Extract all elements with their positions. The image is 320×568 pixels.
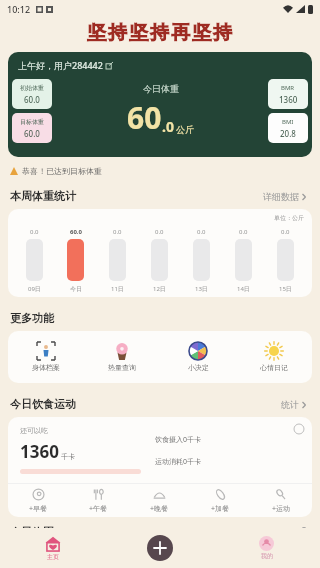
staticText: BMI [282, 118, 294, 126]
staticText: 单位：公斤 [274, 214, 304, 222]
staticText: 15日 [279, 285, 292, 293]
staticText: 还可以吃 [20, 426, 48, 435]
staticText: 20.8 [280, 128, 296, 139]
staticText: 持 [150, 21, 169, 45]
staticText: 0.0 [113, 228, 122, 236]
staticText: 1360 [20, 440, 59, 463]
staticText: 热量查询 [108, 363, 136, 372]
staticText: 主页 [47, 553, 59, 561]
staticText: +午餐 [89, 504, 108, 514]
staticText: 持 [213, 21, 232, 45]
button[interactable]: 0.0 [180, 214, 222, 293]
staticText: 坚 [87, 21, 106, 45]
button[interactable]: +早餐 [8, 484, 68, 517]
staticText: 上午好，用户284442 [18, 59, 103, 71]
staticText: 11日 [111, 285, 124, 293]
button[interactable]: 身体档案 [8, 331, 84, 383]
staticText: 0.0 [239, 228, 248, 236]
button[interactable]: 统计 [278, 396, 310, 413]
button[interactable]: 0.0 [138, 214, 180, 293]
staticText: 坚 [192, 21, 211, 45]
button[interactable]: 帮助 [294, 424, 304, 434]
staticText: 今日体围 [10, 525, 54, 528]
button[interactable]: +晚餐 [129, 484, 190, 517]
staticText: 今日饮食运动 [10, 397, 76, 411]
staticText: +早餐 [29, 504, 48, 514]
staticText: 详细数据 [263, 191, 299, 202]
button[interactable]: BMI [268, 113, 308, 143]
staticText: 0.0 [281, 228, 290, 236]
staticText: 0.0 [155, 228, 164, 236]
staticText: 心情日记 [260, 363, 288, 372]
staticText: 恭喜！已达到目标体重 [22, 166, 102, 176]
staticText: 饮食摄入0千卡 [155, 435, 202, 445]
staticText: 今日 [70, 285, 82, 293]
staticText: 公斤 [176, 124, 194, 135]
button[interactable]: 0.0 [14, 214, 55, 293]
button[interactable]: BMR [268, 79, 308, 109]
staticText: 小决定 [188, 363, 209, 372]
button[interactable]: 我的 [213, 528, 320, 568]
staticText: 千卡 [61, 452, 75, 461]
button[interactable]: 60.0 [55, 214, 96, 293]
button[interactable]: 目标体重 [12, 113, 52, 143]
button[interactable]: 初始体重 [12, 79, 52, 109]
button[interactable]: 更多 [278, 525, 310, 528]
staticText: 今日体重 [143, 83, 179, 94]
staticText: 运动消耗0千卡 [155, 457, 202, 467]
staticText: +晚餐 [150, 504, 169, 514]
staticText: 13日 [195, 285, 208, 293]
staticText: 0.0 [197, 228, 206, 236]
staticText: 12日 [153, 285, 166, 293]
staticText: 更多功能 [10, 311, 54, 325]
button[interactable]: 详细数据 [260, 188, 310, 205]
staticText: 60 [127, 97, 162, 138]
button[interactable]: 0.0 [96, 214, 138, 293]
other: 编辑 [106, 62, 113, 69]
staticText: 身体档案 [32, 363, 60, 372]
staticText: 持 [108, 21, 127, 45]
button[interactable]: 0.0 [264, 214, 306, 293]
staticText: 1360 [279, 94, 298, 105]
staticText: 目标体重 [20, 118, 44, 126]
staticText: 0.0 [30, 228, 39, 236]
staticText: 60.0 [24, 94, 40, 105]
button[interactable]: 小决定 [160, 331, 236, 383]
staticText: +加餐 [211, 504, 230, 514]
staticText: .0 [162, 117, 174, 136]
button[interactable]: 添加 [147, 535, 173, 561]
staticText: 本周体重统计 [10, 189, 76, 203]
staticText: 60.0 [24, 128, 40, 139]
button[interactable]: 心情日记 [236, 331, 312, 383]
staticText: 09日 [28, 285, 41, 293]
button[interactable]: 0.0 [222, 214, 264, 293]
staticText: 14日 [237, 285, 250, 293]
button[interactable]: +运动 [251, 484, 312, 517]
staticText: +运动 [272, 504, 291, 514]
staticText: 再 [171, 21, 190, 45]
button[interactable]: 热量查询 [84, 331, 160, 383]
button[interactable]: 主页 [0, 528, 106, 568]
staticText: 统计 [281, 399, 299, 410]
button[interactable]: +午餐 [68, 484, 129, 517]
staticText: 我的 [261, 552, 273, 560]
staticText: BMR [281, 84, 295, 92]
staticText: 60.0 [70, 228, 82, 236]
staticText: 初始体重 [20, 84, 44, 92]
button[interactable]: +加餐 [190, 484, 251, 517]
staticText: 10:12 [7, 3, 31, 15]
staticText: 坚 [129, 21, 148, 45]
